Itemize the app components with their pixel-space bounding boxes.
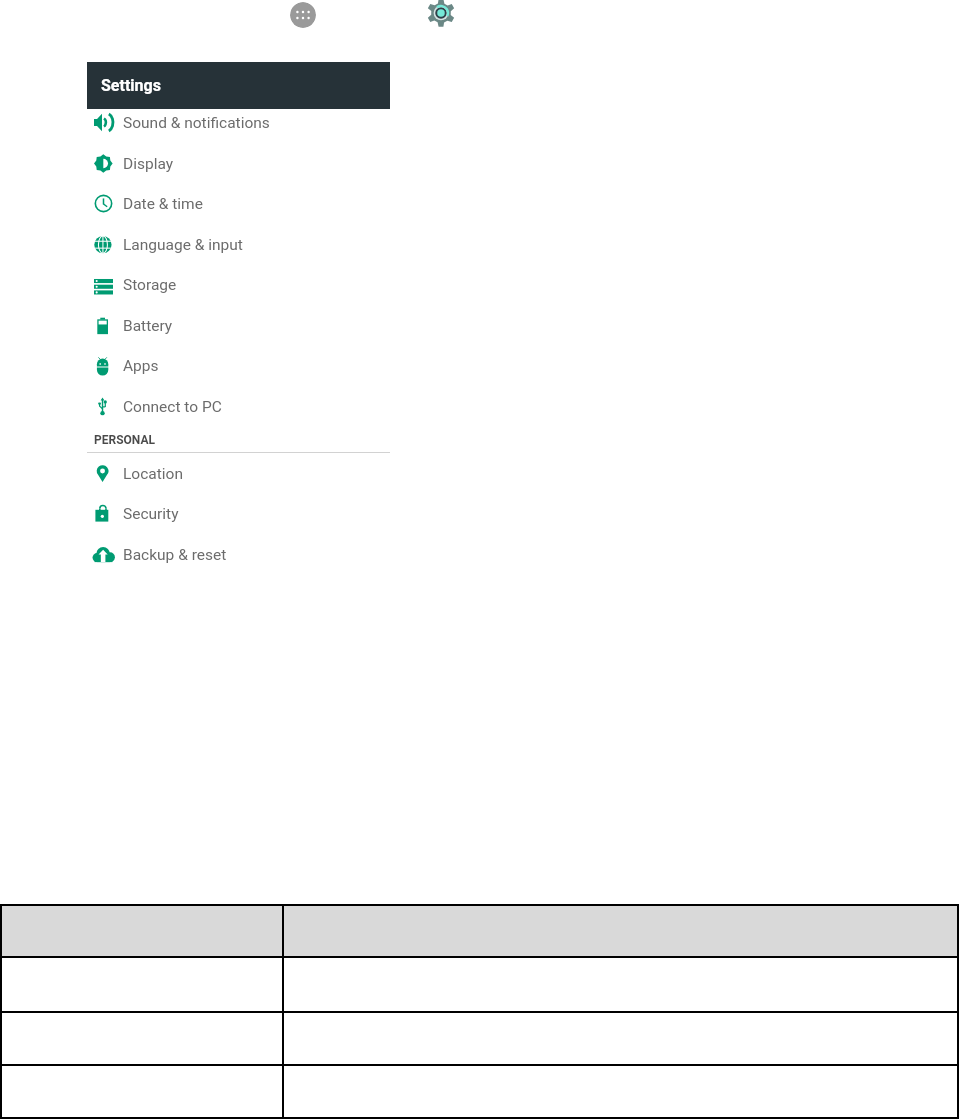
staticText: Storage	[123, 276, 177, 294]
button[interactable]: Security	[87, 493, 390, 534]
button[interactable]: Language & input	[87, 224, 390, 265]
staticText: Settings	[101, 76, 161, 95]
button[interactable]: Connect to PC	[87, 386, 390, 427]
button[interactable]: Location	[87, 453, 390, 494]
button[interactable]: Settings	[87, 62, 390, 109]
button[interactable]: Backup & reset	[87, 534, 390, 575]
staticText: Security	[123, 505, 179, 523]
button[interactable]: Settings	[427, 0, 455, 27]
button[interactable]: Date & time	[87, 183, 390, 224]
button[interactable]: Storage	[87, 264, 390, 305]
staticText: PERSONAL	[94, 433, 155, 447]
staticText: Connect to PC	[123, 398, 222, 416]
staticText: Apps	[123, 357, 159, 375]
button[interactable]: Apps	[87, 345, 390, 386]
button[interactable]: Display	[87, 143, 390, 184]
staticText: Sound & notifications	[123, 114, 270, 132]
staticText: Backup & reset	[123, 546, 227, 564]
button[interactable]: Battery	[87, 305, 390, 346]
staticText: Location	[123, 465, 183, 483]
staticText: Display	[123, 155, 174, 173]
staticText: Battery	[123, 317, 173, 335]
staticText: Language & input	[123, 236, 243, 254]
button[interactable]: Sound & notifications	[87, 102, 390, 143]
staticText: Date & time	[123, 195, 203, 213]
button[interactable]: Apps	[290, 2, 316, 28]
